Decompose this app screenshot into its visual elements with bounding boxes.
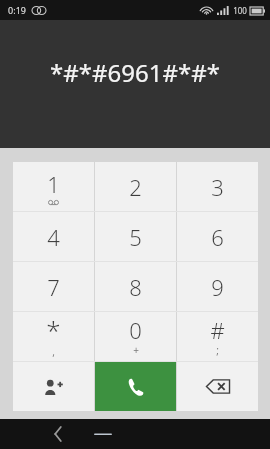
button[interactable]: Add contact [13,362,94,411]
staticText: 2 [129,172,142,202]
staticText: # [210,315,225,345]
staticText: 4 [47,222,60,252]
button[interactable]: Delete [177,362,258,411]
button[interactable]: 5 [95,212,176,261]
staticText: 9 [211,272,224,302]
staticText: 1 [47,169,60,199]
button[interactable]: 7 [13,262,94,311]
button[interactable]: # [177,312,258,361]
button[interactable]: 0 [95,312,176,361]
button[interactable]: 1 [13,162,94,211]
staticText: , [52,345,55,359]
staticText: 0:19 [8,4,26,16]
staticText: 7 [47,272,60,302]
staticText: 8 [129,272,142,302]
staticText: 3 [211,172,224,202]
button[interactable]: * [13,312,94,361]
staticText: ; [216,343,219,357]
button[interactable]: Home [90,424,116,444]
button[interactable]: 4 [13,212,94,261]
button[interactable]: 3 [177,162,258,211]
staticText: 5 [129,222,142,252]
staticText: 100 [233,5,247,16]
button[interactable]: 9 [177,262,258,311]
button[interactable]: 6 [177,212,258,261]
staticText: + [133,343,139,357]
button[interactable]: 8 [95,262,176,311]
staticText: 6 [211,222,224,252]
button[interactable]: Back [46,422,70,446]
button[interactable]: Call [95,362,176,411]
staticText: * [46,312,61,347]
button[interactable]: 2 [95,162,176,211]
staticText: 0 [129,315,142,345]
staticText: *#*#6961#*#* [50,56,220,89]
